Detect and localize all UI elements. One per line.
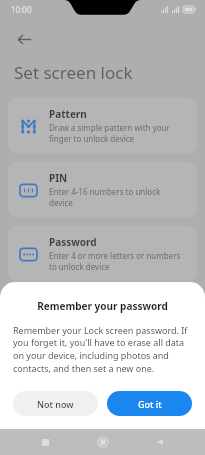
staticText: Remember your password [37,299,168,313]
button[interactable]: PIN [8,162,197,218]
staticText: Password [49,235,97,249]
staticText: Got it [138,398,162,410]
button[interactable]: Password [8,226,197,282]
button[interactable]: Back [147,429,173,455]
button[interactable]: Home [90,429,116,455]
staticText: Remember your Lock screen password. If y… [13,324,192,375]
staticText: Pattern [49,107,87,121]
button[interactable]: Recents [32,429,58,455]
staticText: PIN [49,171,68,185]
staticText: 10:00 [11,4,32,15]
button[interactable]: Pattern [8,98,197,154]
button[interactable]: Got it [107,391,192,416]
button[interactable]: Back [9,24,39,54]
staticText: Enter 4-16 numbers to unlock device [49,186,185,208]
staticText: Enter 4 or more letters or numbers to un… [49,250,185,272]
button[interactable]: Not now [13,391,98,416]
staticText: Draw a simple pattern with your finger t… [49,122,185,144]
staticText: Not now [37,398,74,410]
staticText: Set screen lock [14,61,133,84]
